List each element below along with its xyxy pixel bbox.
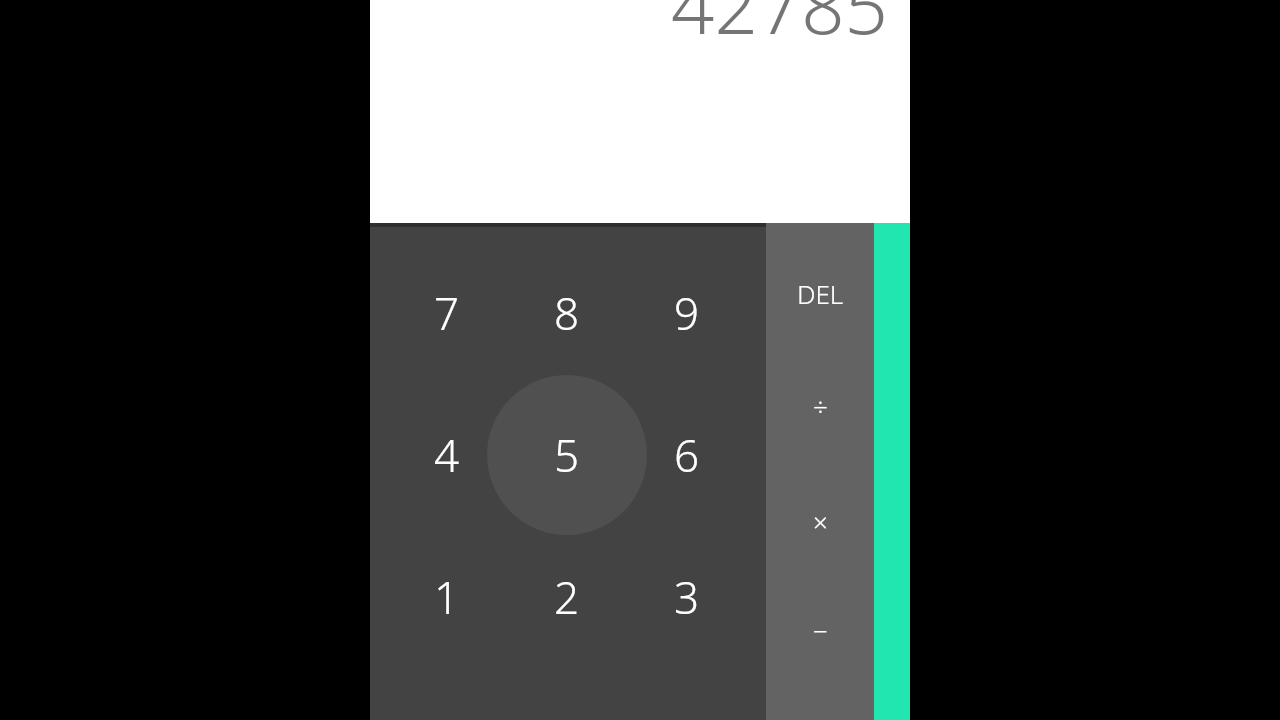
staticText: 1: [434, 567, 460, 627]
button[interactable]: 8: [512, 258, 622, 368]
button[interactable]: Multiply: [766, 471, 874, 571]
button[interactable]: Subtract: [766, 580, 874, 680]
button[interactable]: 3: [632, 542, 742, 652]
button[interactable]: 7: [392, 258, 502, 368]
button[interactable]: DEL: [766, 243, 874, 343]
staticText: −: [813, 613, 828, 648]
button[interactable]: 4: [392, 400, 502, 510]
staticText: DEL: [797, 276, 844, 311]
staticText: ×: [813, 504, 828, 539]
button[interactable]: 1: [392, 542, 502, 652]
staticText: 3: [674, 567, 700, 627]
staticText: 5: [554, 425, 580, 485]
staticText: 8: [554, 283, 580, 343]
staticText: 6: [674, 425, 700, 485]
staticText: 4: [434, 425, 460, 485]
staticText: 2: [554, 567, 580, 627]
button[interactable]: Divide: [766, 355, 874, 455]
staticText: ÷: [813, 388, 828, 423]
staticText: 42785: [671, 0, 888, 57]
staticText: 9: [674, 283, 700, 343]
button[interactable]: 5: [512, 400, 622, 510]
button[interactable]: 6: [632, 400, 742, 510]
button[interactable]: 9: [632, 258, 742, 368]
button[interactable]: 2: [512, 542, 622, 652]
staticText: 7: [434, 283, 460, 343]
